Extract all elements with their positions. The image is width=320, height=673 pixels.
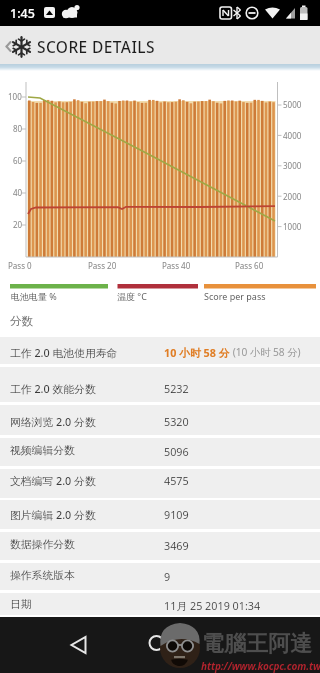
- staticText: 100: [8, 91, 22, 102]
- staticText: 日期: [10, 598, 32, 612]
- button[interactable]: 文档编写 2.0 分数: [0, 469, 320, 498]
- staticText: 60: [13, 155, 23, 166]
- button[interactable]: [0, 617, 106, 673]
- staticText: Pass 0: [8, 260, 32, 271]
- staticText: (10 小时 58 分): [230, 345, 301, 359]
- staticText: 4575: [164, 473, 189, 488]
- staticText: 11月 25 2019 01:34: [164, 598, 261, 613]
- button[interactable]: [0, 26, 40, 64]
- button[interactable]: 视频编辑分数: [0, 438, 320, 466]
- button[interactable]: 图片编辑 2.0 分数: [0, 500, 320, 529]
- staticText: 5096: [164, 444, 189, 459]
- staticText: 電腦王阿達: [202, 630, 312, 658]
- staticText: 工作 2.0 效能分数: [10, 381, 96, 396]
- staticText: 4000: [283, 130, 302, 141]
- staticText: 工作 2.0 电池使用寿命: [10, 345, 118, 360]
- staticText: 网络浏览 2.0 分数: [10, 414, 96, 429]
- staticText: 分数: [10, 314, 33, 328]
- button[interactable]: 工作 2.0 电池使用寿命: [0, 337, 320, 364]
- staticText: Pass 60: [235, 260, 264, 271]
- button[interactable]: 日期: [0, 593, 320, 615]
- staticText: 20: [13, 219, 23, 230]
- staticText: Pass 40: [162, 260, 191, 271]
- staticText: Score per pass: [204, 290, 266, 302]
- button[interactable]: [106, 617, 213, 673]
- staticText: 文档编写 2.0 分数: [10, 473, 96, 488]
- staticText: 2000: [283, 191, 302, 202]
- staticText: 数据操作分数: [10, 538, 75, 552]
- staticText: Pass 20: [88, 260, 117, 271]
- staticText: 3000: [283, 160, 302, 171]
- staticText: 1:45: [10, 5, 35, 22]
- staticText: 9109: [164, 507, 189, 522]
- staticText: 图片编辑 2.0 分数: [10, 507, 96, 522]
- staticText: 电池电量 %: [11, 290, 57, 302]
- button[interactable]: 网络浏览 2.0 分数: [0, 405, 320, 435]
- button[interactable]: [213, 617, 320, 673]
- staticText: SCORE DETAILS: [37, 36, 155, 57]
- staticText: 5232: [164, 381, 189, 396]
- staticText: 1000: [283, 221, 302, 232]
- button[interactable]: 工作 2.0 效能分数: [0, 367, 320, 402]
- staticText: 操作系统版本: [10, 569, 75, 583]
- staticText: 5320: [164, 414, 189, 429]
- button[interactable]: 操作系统版本: [0, 563, 320, 590]
- staticText: http://www.kocpc.com.tw: [201, 659, 320, 673]
- staticText: 3469: [164, 538, 189, 553]
- staticText: 5000: [283, 99, 302, 110]
- staticText: 视频编辑分数: [10, 444, 75, 458]
- staticText: 10 小时 58 分: [164, 345, 230, 360]
- staticText: 温度 °C: [117, 290, 147, 302]
- staticText: 40: [13, 187, 23, 198]
- staticText: 9: [164, 569, 171, 584]
- button[interactable]: 数据操作分数: [0, 532, 320, 560]
- staticText: 80: [13, 123, 23, 134]
